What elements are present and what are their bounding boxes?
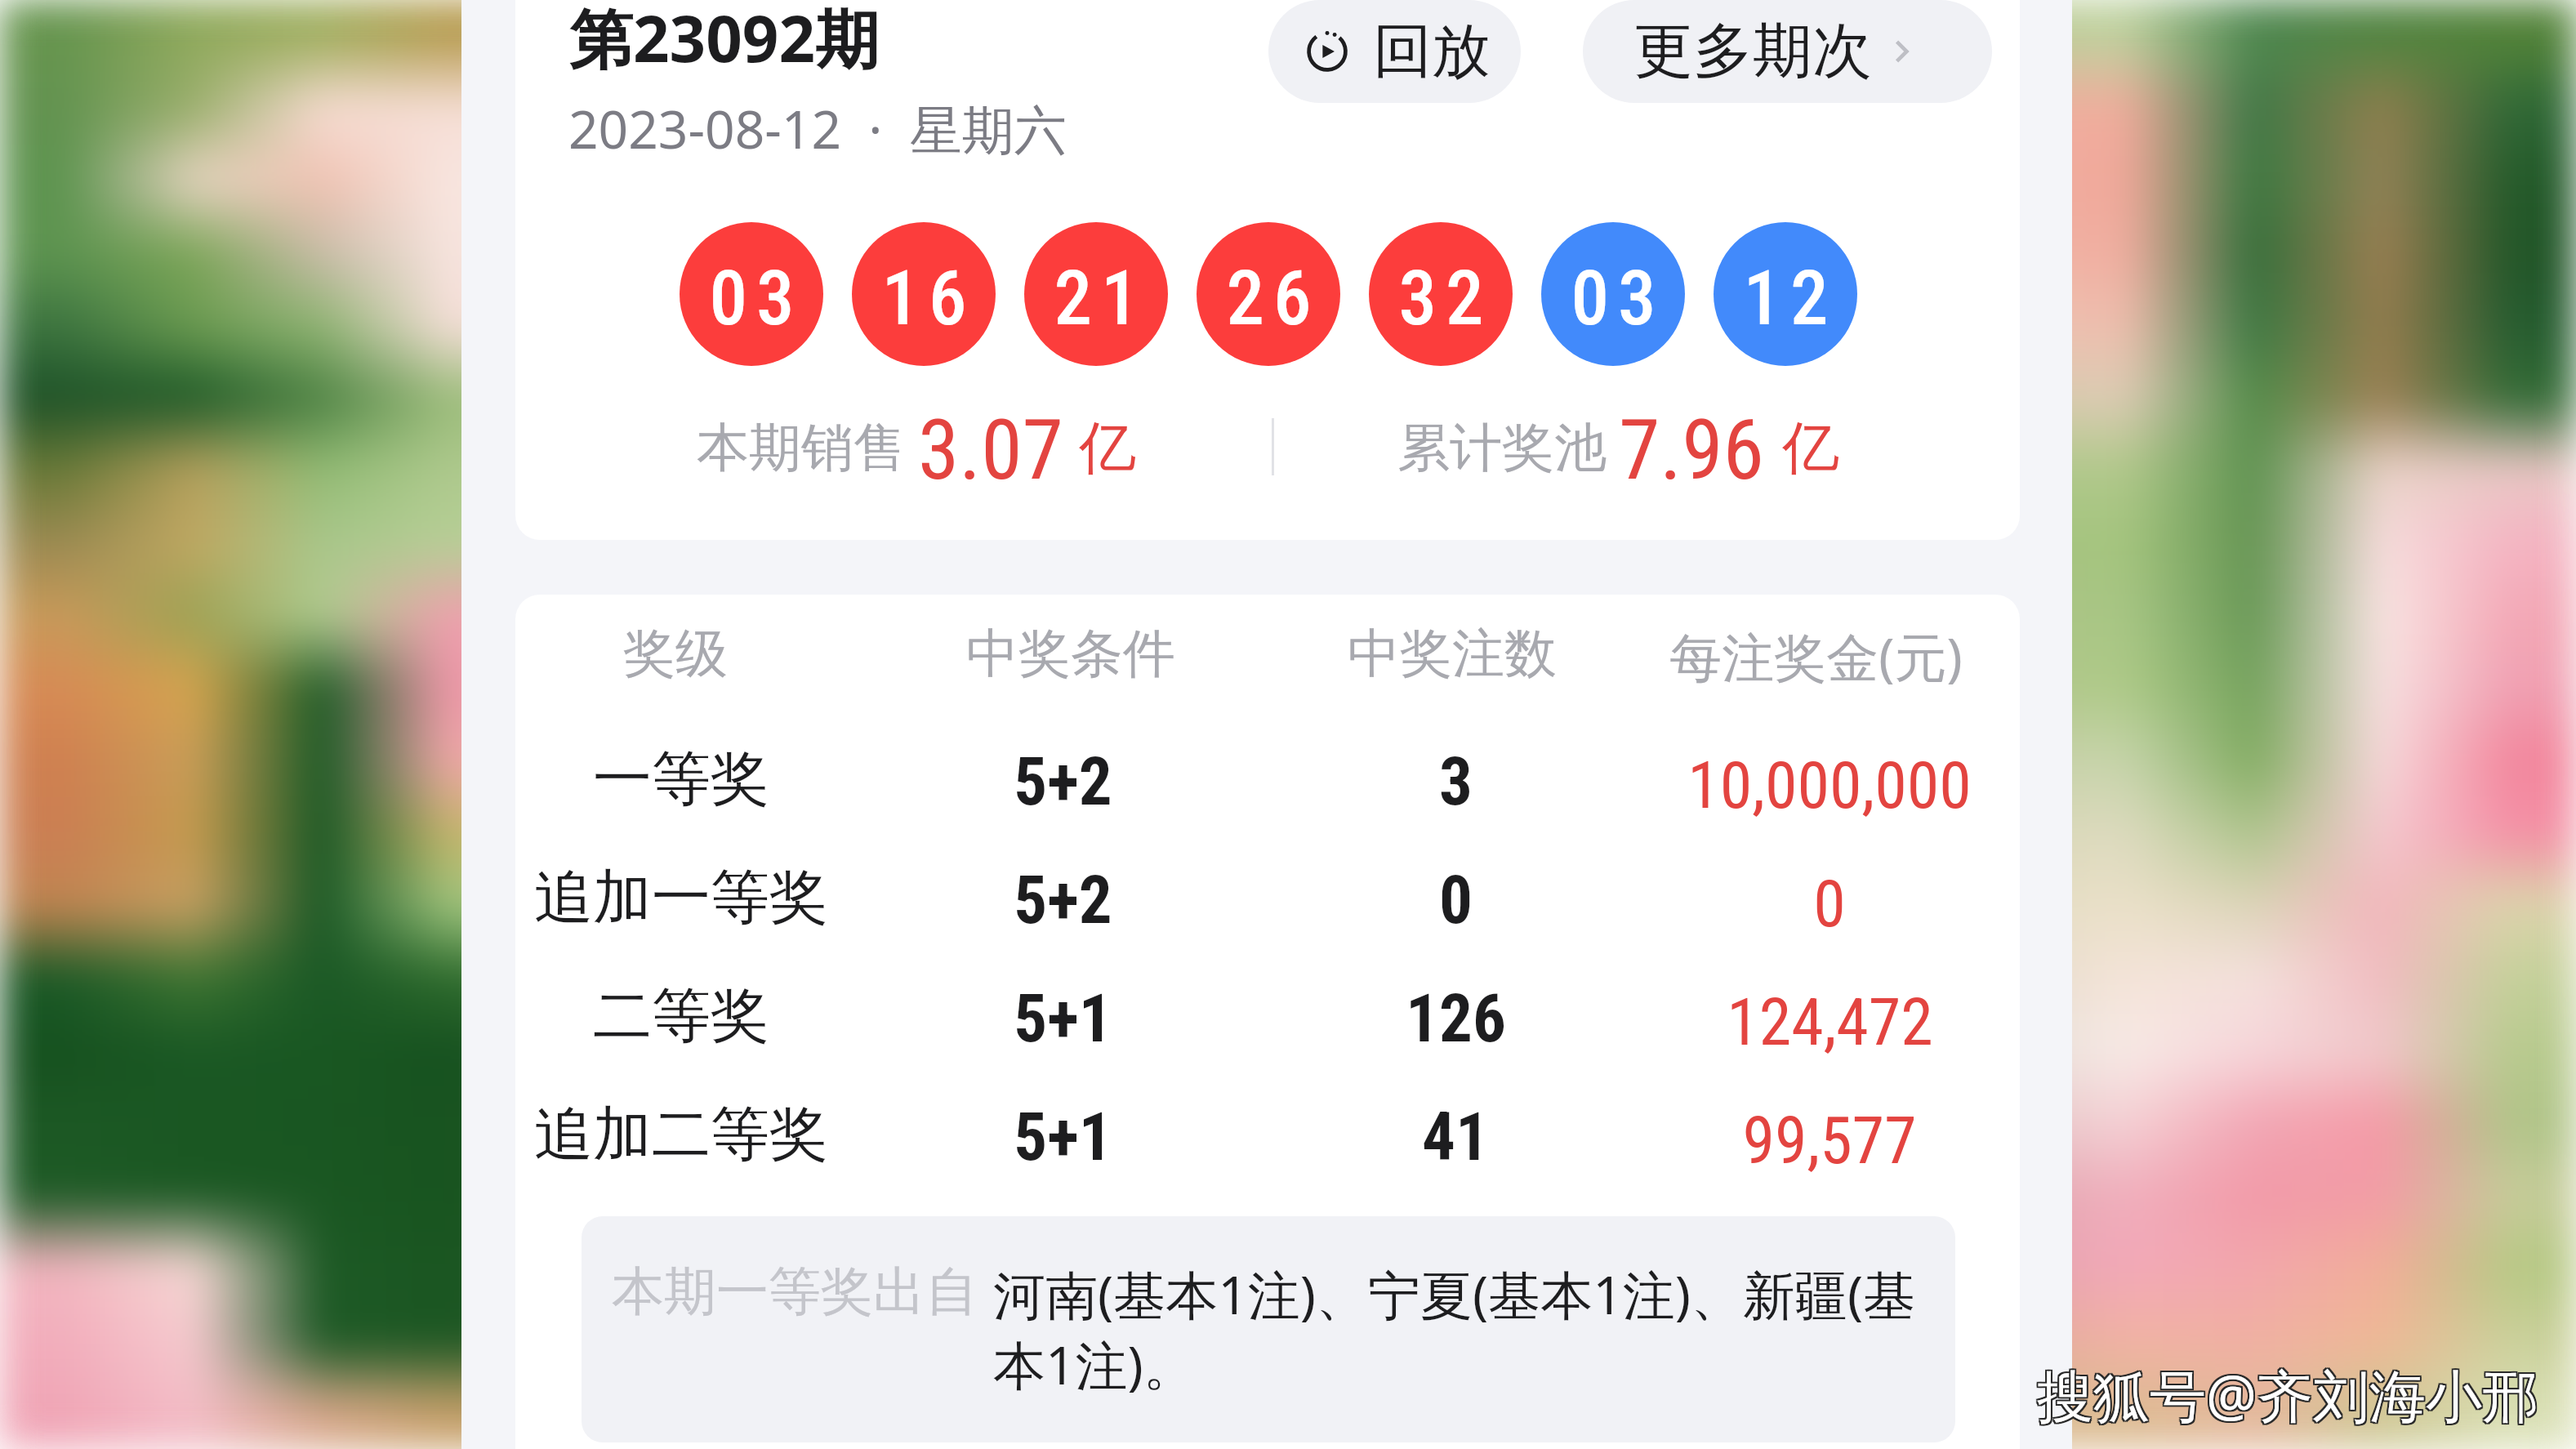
staticText: 亿 [1782, 412, 1839, 484]
staticText: 126 [1406, 980, 1506, 1058]
staticText: 搜狐号@齐刘海小邢 [2039, 1354, 2541, 1431]
staticText: 5+2 [1014, 862, 1112, 939]
staticText: 3 [1439, 743, 1473, 821]
staticText: 本期一等奖出自 [612, 1259, 978, 1325]
staticText: 3.07 [918, 401, 1063, 499]
staticText: 7.96 [1619, 401, 1764, 499]
staticText: 回放 [1373, 15, 1491, 89]
staticText: 二等奖 [593, 979, 769, 1054]
button[interactable]: 更多期次 [1583, 0, 1992, 103]
staticText: 12 [1739, 254, 1833, 343]
staticText: 搜狐号@齐刘海小邢 [2037, 1358, 2539, 1434]
staticText: 一等奖 [593, 742, 769, 817]
staticText: 搜狐号@齐刘海小邢 [2037, 1354, 2539, 1431]
staticText: 5+2 [1014, 743, 1112, 821]
staticText: 更多期次 [1633, 14, 1872, 89]
staticText: 2023-08-12 · 星期六 [568, 93, 1067, 164]
staticText: 搜狐号@齐刘海小邢 [2035, 1358, 2538, 1434]
staticText: 0 [1813, 866, 1846, 943]
staticText: 03 [705, 254, 799, 343]
staticText: 5+1 [1014, 1099, 1112, 1176]
staticText: 搜狐号@齐刘海小邢 [2035, 1354, 2538, 1431]
staticText: 99,577 [1742, 1103, 1917, 1179]
staticText: 搜狐号@齐刘海小邢 [2035, 1356, 2538, 1433]
staticText: 21 [1050, 254, 1143, 343]
staticText: 搜狐号@齐刘海小邢 [2039, 1358, 2541, 1434]
staticText: 中奖条件 [966, 621, 1175, 687]
staticText: 搜狐号@齐刘海小邢 [2039, 1356, 2541, 1433]
staticText: 奖级 [623, 621, 728, 687]
staticText: 追加一等奖 [534, 861, 828, 935]
staticText: 16 [877, 254, 971, 343]
staticText: 124,472 [1727, 984, 1933, 1061]
staticText: 追加二等奖 [534, 1098, 828, 1172]
button[interactable]: Replay draw [1268, 0, 1521, 103]
staticText: 5+1 [1014, 980, 1112, 1058]
other: More draws [1883, 33, 1921, 70]
other: Replay draw [1304, 29, 1350, 74]
staticText: 41 [1422, 1099, 1489, 1176]
staticText: 累计奖池 [1397, 415, 1607, 481]
staticText: 本期销售 [697, 415, 906, 481]
staticText: 32 [1394, 254, 1488, 343]
staticText: 26 [1222, 254, 1316, 343]
staticText: 河南(基本1注)、宁夏(基本1注)、新疆(基本1注)。 [993, 1259, 1941, 1400]
staticText: 每注奖金(元) [1669, 621, 1963, 692]
staticText: 中奖注数 [1348, 621, 1557, 687]
staticText: 搜狐号@齐刘海小邢 [2037, 1356, 2539, 1433]
staticText: 第23092期 [569, 0, 880, 82]
staticText: 03 [1567, 254, 1660, 343]
staticText: 10,000,000 [1687, 747, 1972, 824]
staticText: 亿 [1079, 412, 1136, 484]
staticText: 0 [1439, 862, 1473, 939]
